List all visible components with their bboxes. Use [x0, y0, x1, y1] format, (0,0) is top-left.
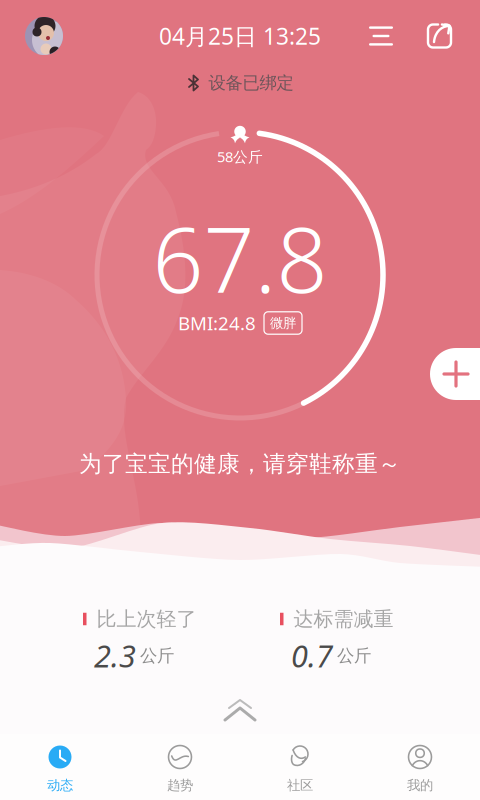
staticText: 微胖	[270, 315, 296, 331]
staticText: 公斤	[337, 645, 371, 666]
button[interactable]: Add record	[430, 348, 480, 400]
staticText: 达标需减重	[293, 607, 393, 631]
staticText: 趋势	[167, 777, 193, 793]
button[interactable]: 动态	[0, 734, 120, 800]
staticText: 比上次轻了	[96, 607, 196, 631]
button[interactable]: Share	[425, 21, 454, 50]
button[interactable]: 趋势	[120, 734, 240, 800]
staticText: BMI:24.8	[178, 311, 256, 335]
button[interactable]: Profile	[25, 17, 63, 55]
button[interactable]: 我的	[360, 734, 480, 800]
staticText: 04月25日 13:25	[159, 21, 321, 51]
staticText: 动态	[47, 777, 73, 793]
staticText: 0.7	[291, 635, 333, 676]
staticText: 我的	[407, 777, 433, 793]
staticText: 为了宝宝的健康，请穿鞋称重～	[79, 450, 401, 478]
staticText: 社区	[287, 777, 313, 793]
button[interactable]: Menu	[367, 22, 395, 50]
staticText: 58公斤	[217, 147, 263, 166]
staticText: 2.3	[94, 635, 136, 676]
button[interactable]: 社区	[240, 734, 360, 800]
staticText: 公斤	[140, 645, 174, 666]
staticText: 67.8	[152, 199, 327, 317]
staticText: 设备已绑定	[208, 72, 293, 94]
button[interactable]: Expand	[221, 698, 259, 724]
